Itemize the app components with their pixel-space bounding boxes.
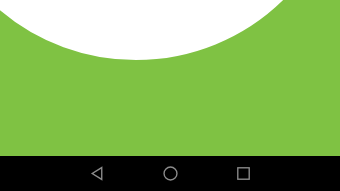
button[interactable]: Home [150,156,190,191]
button[interactable]: Back [77,156,117,191]
button[interactable]: Recent apps [223,156,263,191]
